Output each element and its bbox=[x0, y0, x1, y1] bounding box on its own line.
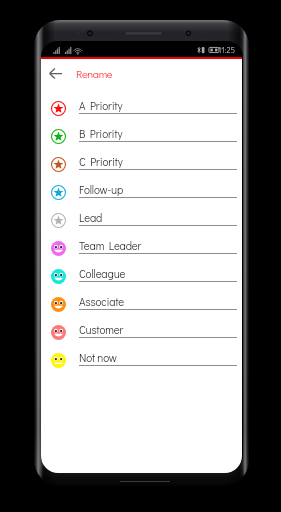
staticText: Customer bbox=[79, 322, 124, 337]
button[interactable]: A Priority bbox=[41, 94, 242, 122]
staticText: Lead bbox=[79, 210, 103, 225]
staticText: Rename bbox=[76, 66, 113, 80]
staticText: A Priority bbox=[79, 98, 123, 113]
button[interactable]: Not now bbox=[41, 346, 242, 374]
button[interactable]: Back bbox=[42, 60, 68, 86]
staticText: Not now bbox=[79, 350, 117, 365]
staticText: Follow-up bbox=[79, 182, 124, 197]
button[interactable]: Associate bbox=[41, 290, 242, 318]
staticText: 11:25 bbox=[218, 45, 235, 55]
button[interactable]: Lead bbox=[41, 206, 242, 234]
button[interactable]: Follow-up bbox=[41, 178, 242, 206]
button[interactable]: Team Leader bbox=[41, 234, 242, 262]
staticText: B Priority bbox=[79, 126, 123, 141]
staticText: Team Leader bbox=[79, 238, 142, 253]
button[interactable]: B Priority bbox=[41, 122, 242, 150]
button[interactable]: C Priority bbox=[41, 150, 242, 178]
staticText: Associate bbox=[79, 294, 125, 309]
button[interactable]: Colleague bbox=[41, 262, 242, 290]
staticText: C Priority bbox=[79, 154, 123, 169]
staticText: Colleague bbox=[79, 266, 126, 281]
button[interactable]: Customer bbox=[41, 318, 242, 346]
